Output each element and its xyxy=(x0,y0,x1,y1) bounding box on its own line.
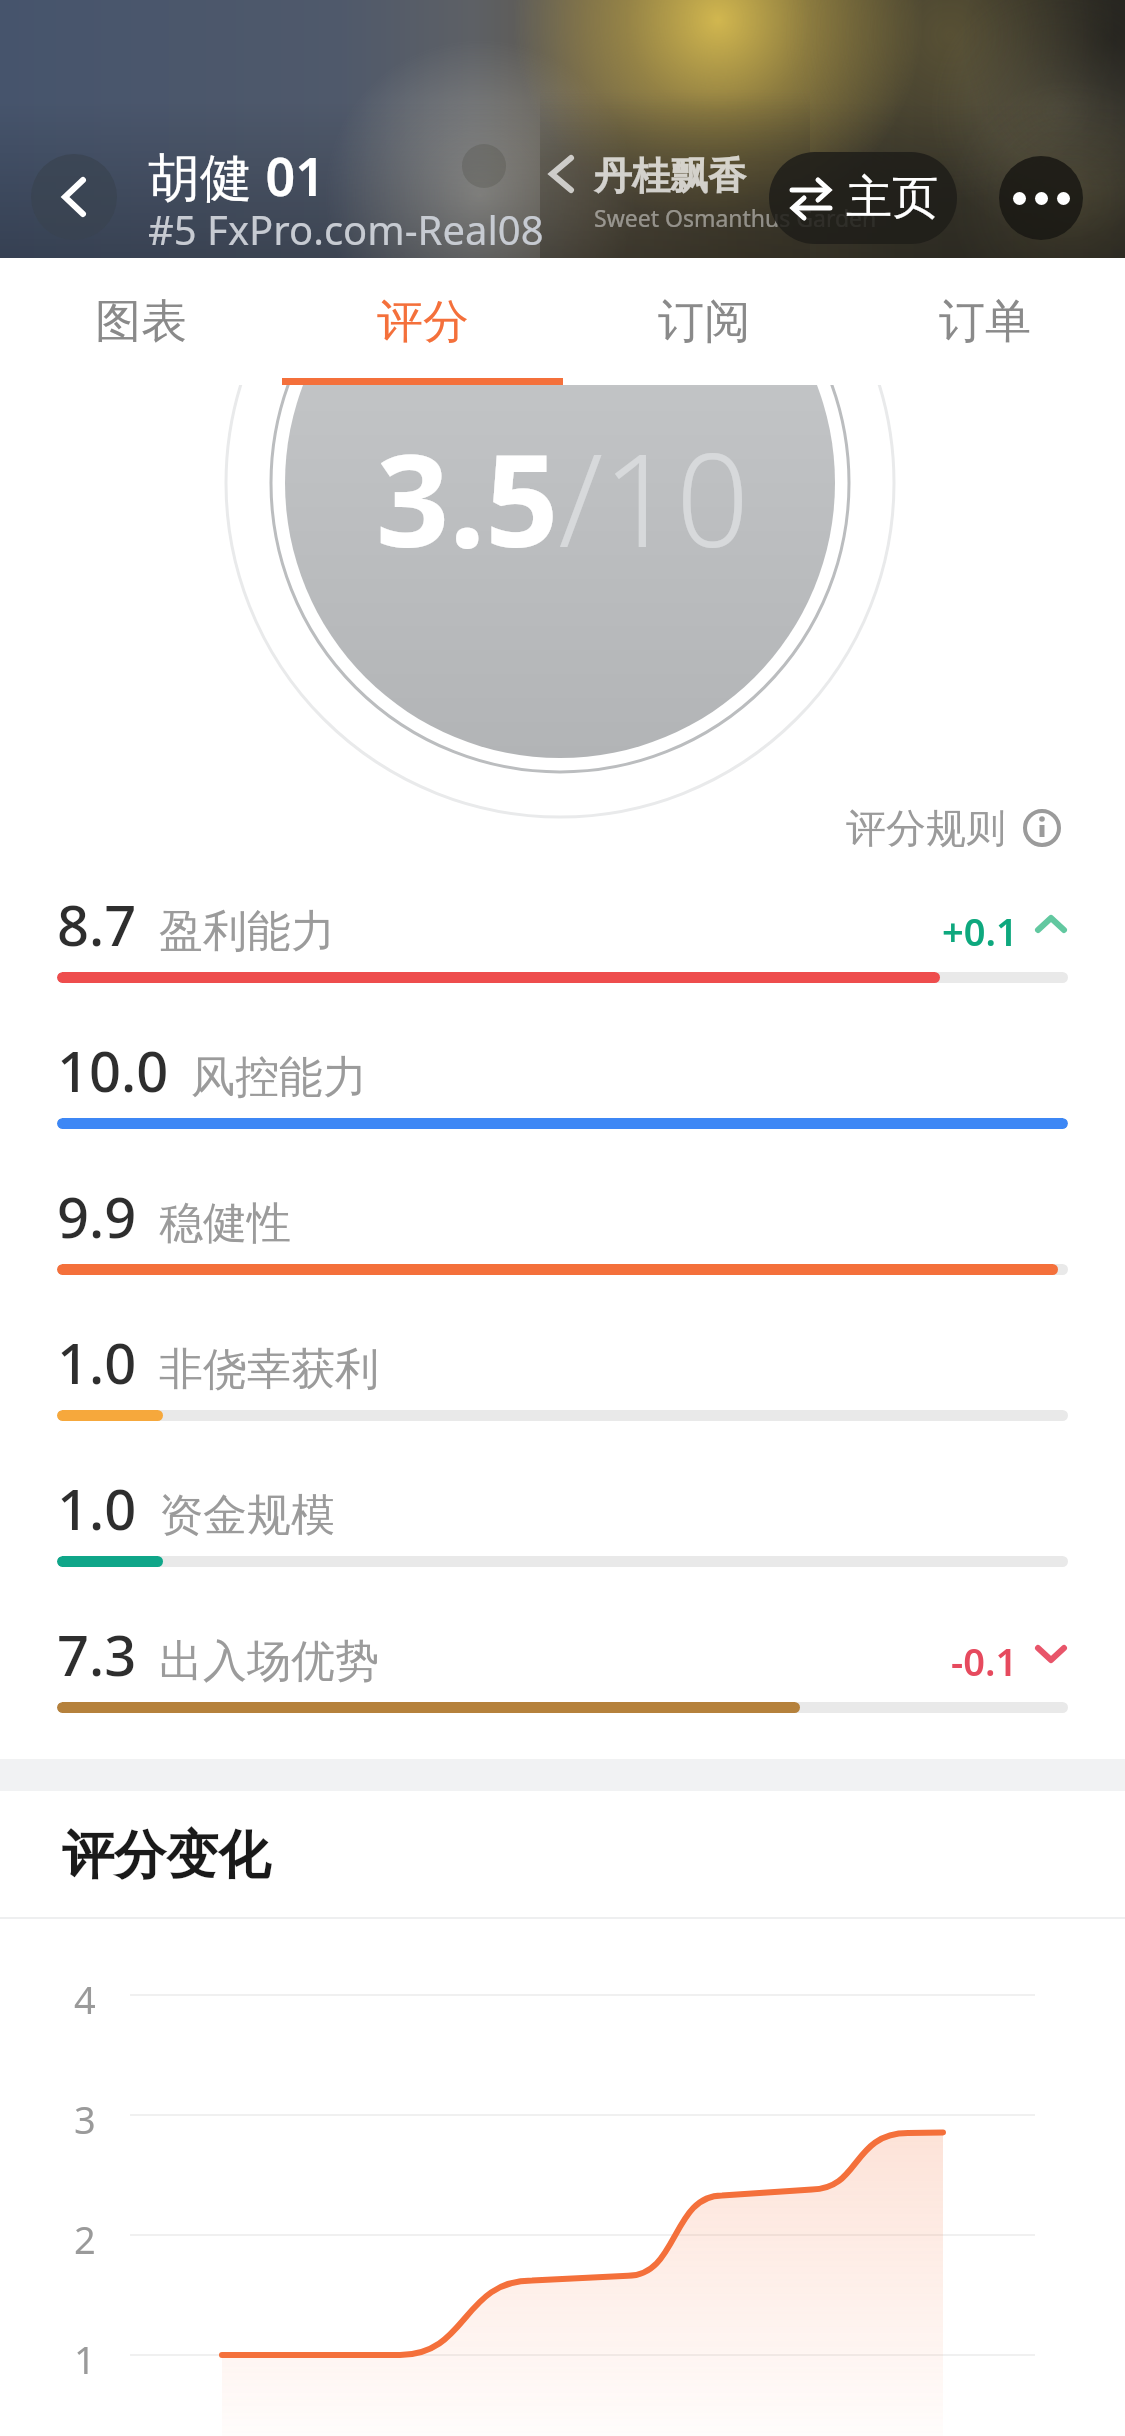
staticText: 评分规则 xyxy=(846,803,1006,853)
staticText: 主页 xyxy=(846,169,938,227)
staticText: 订阅 xyxy=(658,293,750,351)
staticText: 出入场优势 xyxy=(159,1634,379,1689)
staticText: 3 xyxy=(74,2093,96,2137)
staticText: +0.1 xyxy=(942,905,1018,957)
staticText: 订单 xyxy=(939,293,1031,351)
staticText: 8.7 xyxy=(57,886,137,962)
staticText: 4 xyxy=(74,1973,96,2017)
staticText: 3.5/10 xyxy=(376,410,749,584)
staticText: -0.1 xyxy=(951,1635,1018,1687)
button[interactable]: 订单 xyxy=(844,258,1125,385)
staticText: 评分 xyxy=(377,293,469,351)
staticText: 图表 xyxy=(95,293,187,351)
button[interactable]: 主页 xyxy=(769,152,957,244)
staticText: 非侥幸获利 xyxy=(159,1342,379,1397)
staticText: 1.0 xyxy=(57,1324,137,1400)
button[interactable] xyxy=(999,156,1083,240)
staticText: 9.9 xyxy=(57,1178,137,1254)
button[interactable]: 订阅 xyxy=(563,258,844,385)
staticText: 风控能力 xyxy=(191,1050,367,1105)
button[interactable]: 评分 xyxy=(282,258,563,385)
button[interactable] xyxy=(31,154,117,240)
staticText: 1 xyxy=(74,2333,96,2377)
button[interactable]: 评分规则 xyxy=(846,803,1062,853)
staticText: 稳健性 xyxy=(159,1196,291,1251)
staticText: 7.3 xyxy=(57,1616,137,1692)
staticText: 1.0 xyxy=(57,1470,137,1546)
staticText: 丹桂飘香 xyxy=(594,152,746,200)
staticText: 胡健 01 xyxy=(148,140,326,211)
button[interactable]: 图表 xyxy=(0,258,282,385)
staticText: 评分变化 xyxy=(62,1823,270,1889)
staticText: Sweet Osmanthus Garden xyxy=(594,202,877,233)
staticText: 2 xyxy=(74,2213,96,2257)
staticText: 盈利能力 xyxy=(159,904,335,959)
staticText: #5 FxPro.com-Real08 xyxy=(148,202,544,256)
staticText: 10.0 xyxy=(57,1032,169,1108)
staticText: 资金规模 xyxy=(159,1488,335,1543)
